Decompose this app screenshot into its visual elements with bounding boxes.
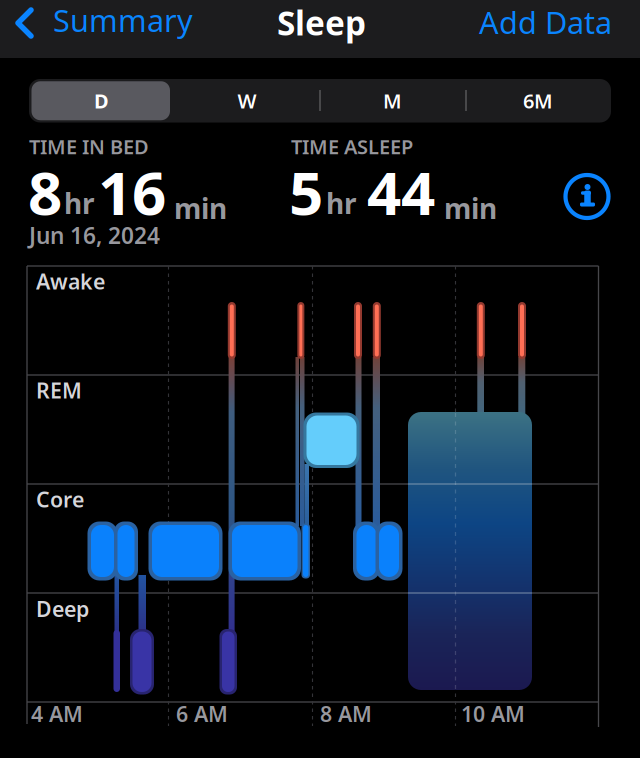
button[interactable] [562, 171, 612, 221]
staticText: Core [36, 485, 84, 513]
staticText: Deep [36, 595, 89, 623]
staticText: hr [64, 185, 95, 222]
staticText: hr [326, 185, 357, 222]
staticText: 10 AM [461, 700, 525, 728]
staticText: 6 AM [176, 700, 228, 728]
staticText: D [94, 87, 109, 114]
button[interactable]: D [29, 79, 174, 122]
staticText: TIME ASLEEP [291, 133, 413, 160]
staticText: Summary [53, 0, 193, 40]
staticText: Add Data [479, 2, 612, 42]
button[interactable]: Add Data [479, 0, 619, 58]
staticText: M [383, 87, 402, 114]
staticText: 6M [523, 87, 553, 114]
button[interactable]: M [320, 79, 465, 122]
staticText: 44 [367, 152, 435, 231]
button[interactable]: W [174, 79, 319, 122]
staticText: TIME IN BED [29, 133, 149, 160]
staticText: W [237, 87, 256, 114]
staticText: 5 [289, 152, 323, 231]
button[interactable]: Summary [0, 0, 200, 58]
staticText: min [444, 190, 497, 227]
button[interactable]: 6M [465, 79, 610, 122]
staticText: Jun 16, 2024 [29, 220, 160, 250]
staticText: 16 [98, 152, 166, 231]
staticText: REM [36, 376, 82, 404]
staticText: Sleep [277, 0, 366, 45]
staticText: min [174, 190, 227, 227]
staticText: Awake [36, 267, 105, 295]
staticText: 4 AM [31, 700, 83, 728]
staticText: 8 AM [320, 700, 372, 728]
staticText: 8 [28, 152, 62, 231]
